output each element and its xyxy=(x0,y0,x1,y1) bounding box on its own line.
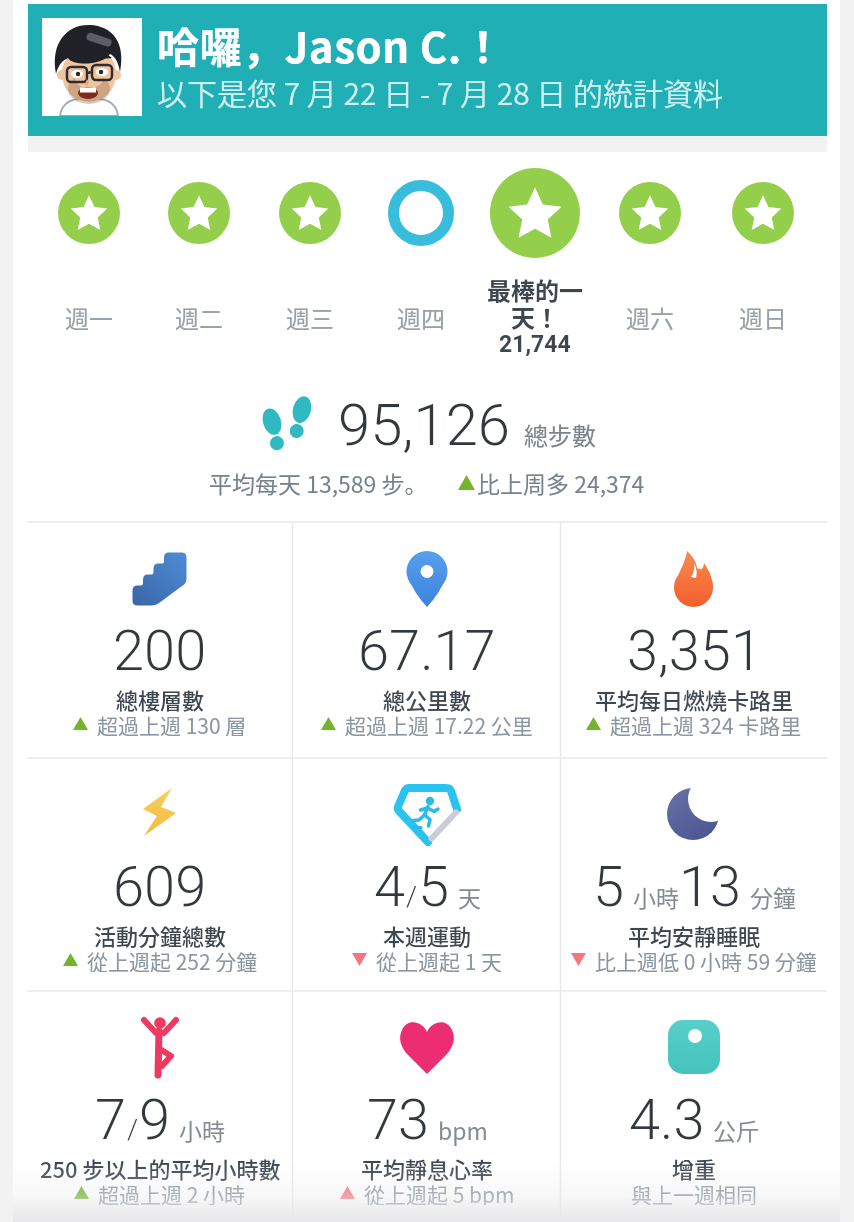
staticText: 67.17 xyxy=(358,618,496,682)
staticText: 95,126 xyxy=(338,391,510,459)
button[interactable] xyxy=(619,182,681,244)
button[interactable] xyxy=(27,522,293,755)
button[interactable] xyxy=(294,522,560,755)
button[interactable] xyxy=(732,182,794,244)
staticText: 活動分鐘總數 xyxy=(94,919,227,949)
staticText: 週三 xyxy=(286,300,334,330)
button[interactable] xyxy=(42,18,142,116)
staticText: 超過上週 130 層 xyxy=(97,710,247,736)
staticText: 週四 xyxy=(397,300,445,330)
button[interactable] xyxy=(28,4,827,136)
button[interactable] xyxy=(294,758,560,991)
staticText: 4 xyxy=(374,854,406,918)
staticText: 比上周多 24,374 xyxy=(477,466,645,498)
staticText: 21,744 xyxy=(499,331,571,358)
staticText: 總樓層數 xyxy=(116,683,205,713)
staticText: 超過上週 17.22 公里 xyxy=(345,710,533,736)
staticText: 週二 xyxy=(175,300,223,330)
staticText: 比上週低 0 小時 59 分鐘 xyxy=(595,946,817,972)
staticText: bpm xyxy=(438,1113,488,1146)
staticText: 超過上週 324 卡路里 xyxy=(610,710,802,736)
staticText: 分鐘 xyxy=(750,880,796,913)
button[interactable] xyxy=(388,180,454,246)
staticText: 13 xyxy=(679,854,742,918)
button[interactable] xyxy=(279,182,341,244)
staticText: / xyxy=(127,1113,139,1146)
button[interactable] xyxy=(27,991,293,1222)
staticText: 最棒的一 天！ xyxy=(487,272,583,334)
staticText: 從上週起 1 天 xyxy=(376,946,503,972)
staticText: 平均安靜睡眠 xyxy=(628,919,761,949)
staticText: 從上週起 252 分鐘 xyxy=(87,946,258,972)
staticText: 哈囉，Jason C.！ xyxy=(157,14,505,75)
staticText: 73 xyxy=(367,1087,430,1151)
button[interactable] xyxy=(561,522,827,755)
staticText: 週六 xyxy=(626,300,674,330)
staticText: 7 xyxy=(95,1087,127,1151)
staticText: 250 步以上的平均小時數 xyxy=(40,1152,281,1182)
staticText: 總公里數 xyxy=(383,683,472,713)
staticText: 9 xyxy=(139,1087,171,1151)
staticText: 平均每天 13,589 步。 xyxy=(209,466,428,498)
staticText: 與上一週相同 xyxy=(631,1179,757,1205)
button[interactable] xyxy=(561,991,827,1222)
staticText: 從上週起 5 bpm xyxy=(364,1179,515,1205)
staticText: 增重 xyxy=(672,1152,717,1182)
staticText: 小時 xyxy=(179,1113,225,1146)
staticText: 609 xyxy=(113,854,207,918)
button[interactable] xyxy=(561,758,827,991)
staticText: 200 xyxy=(113,618,207,682)
staticText: 平均每日燃燒卡路里 xyxy=(595,683,794,713)
button[interactable] xyxy=(168,182,230,244)
button[interactable] xyxy=(27,758,293,991)
staticText: 週日 xyxy=(739,300,787,330)
staticText: 公斤 xyxy=(713,1113,759,1146)
button[interactable] xyxy=(294,991,560,1222)
staticText: / xyxy=(406,880,418,913)
staticText: 3,351 xyxy=(627,618,762,682)
staticText: 5 xyxy=(593,854,625,918)
button[interactable] xyxy=(58,182,120,244)
staticText: 週一 xyxy=(65,300,113,330)
staticText: 超過上週 2 小時 xyxy=(98,1179,246,1205)
staticText: 平均靜息心率 xyxy=(361,1152,494,1182)
staticText: 4.3 xyxy=(629,1087,705,1151)
staticText: 小時 xyxy=(633,880,679,913)
button[interactable] xyxy=(490,168,580,258)
staticText: 5 xyxy=(418,854,450,918)
staticText: 本週運動 xyxy=(383,919,472,949)
staticText: 天 xyxy=(458,880,481,913)
staticText: 總步數 xyxy=(524,417,596,452)
staticText: 以下是您 7 月 22 日 - 7 月 28 日 的統計資料 xyxy=(157,70,724,113)
